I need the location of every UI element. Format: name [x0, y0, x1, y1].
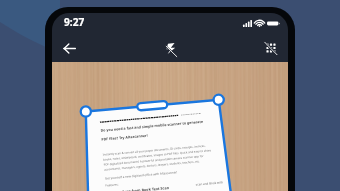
- button[interactable]: Grid off: [258, 35, 284, 61]
- staticText: PDF digitalized documents! A powerful an…: [103, 154, 204, 167]
- staticText: books, notes, whiteboard, certificates, …: [103, 148, 212, 162]
- staticText: accountants, managers, agents, doctors, …: [104, 159, 200, 172]
- button[interactable]: Flash off: [157, 35, 183, 61]
- staticText: PDF files? Try Altascanner!: [101, 133, 148, 142]
- staticText: Instantly scan & convert all your paper …: [103, 144, 206, 157]
- button[interactable]: Back: [56, 35, 82, 61]
- staticText: - Scan from Book Text Scan: [120, 185, 170, 191]
- staticText: Get yourself a new digitized office with…: [105, 170, 178, 181]
- staticText: 9:27: [64, 15, 85, 29]
- staticText: Features:: [105, 182, 119, 188]
- staticText: scan and Book with: [196, 180, 224, 187]
- staticText: Do you need a fast and simple mobile sca…: [100, 119, 203, 133]
